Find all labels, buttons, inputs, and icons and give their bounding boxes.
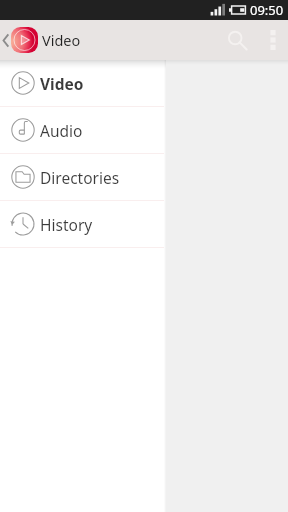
staticText: Audio — [40, 120, 83, 141]
button[interactable]: Video — [0, 60, 166, 106]
staticText: History — [40, 214, 93, 235]
button[interactable]: Directories — [0, 154, 166, 200]
button[interactable]: Search — [218, 22, 254, 58]
staticText: Video — [42, 30, 81, 50]
button[interactable]: Open navigation drawer — [0, 20, 38, 60]
staticText: Video — [40, 73, 84, 94]
button[interactable]: Audio — [0, 107, 166, 153]
button[interactable]: More options — [258, 25, 288, 55]
staticText: 09:50 — [250, 1, 284, 19]
button[interactable]: History — [0, 201, 166, 247]
staticText: Directories — [40, 167, 120, 188]
